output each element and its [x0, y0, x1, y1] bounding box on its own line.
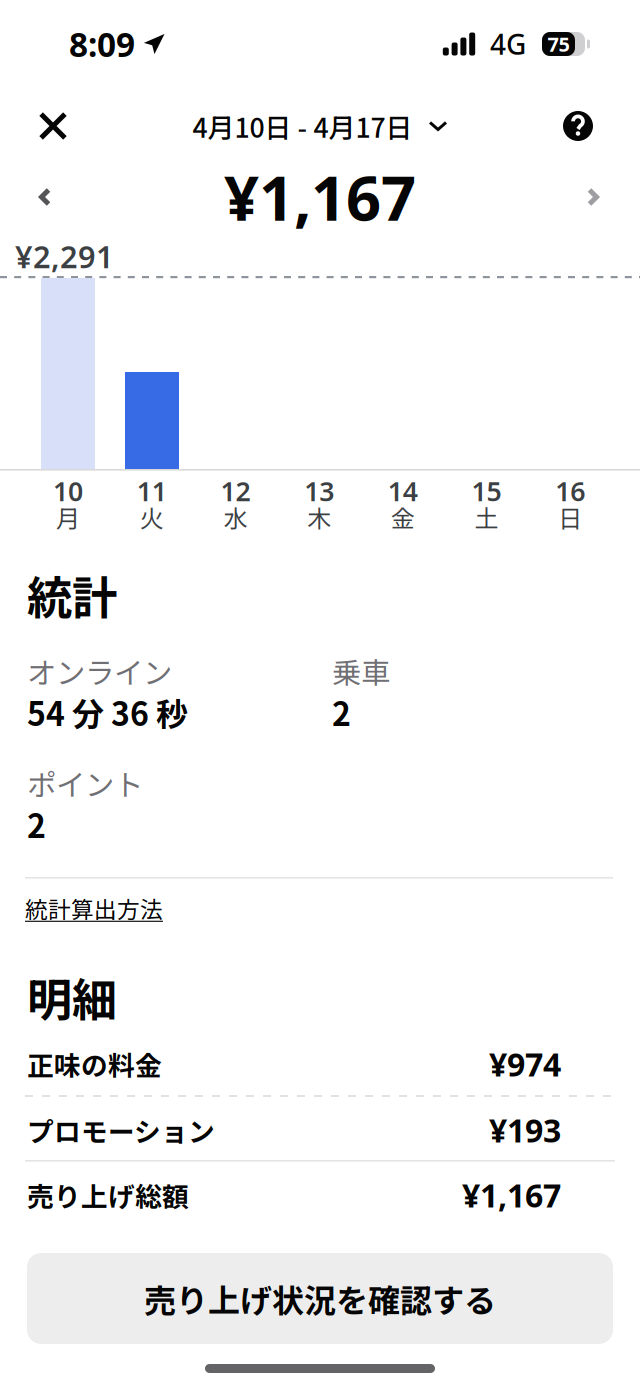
staticText: ポイント [27, 762, 143, 804]
staticText: ¥974 [489, 1043, 561, 1085]
staticText: 火 [140, 500, 164, 534]
button[interactable]: 4月10日 - 4月17日 [182, 95, 457, 157]
staticText: 4G [490, 25, 526, 63]
staticText: 10 [53, 473, 83, 509]
button[interactable]: 統計算出方法 [25, 888, 163, 928]
staticText: ¥193 [489, 1109, 561, 1151]
staticText: 54 分 36 秒 [27, 689, 188, 735]
button[interactable]: Help [547, 95, 609, 157]
staticText: 75 [547, 31, 569, 57]
staticText: 乗車 [332, 650, 390, 692]
staticText: 統計算出方法 [25, 892, 163, 924]
staticText: 12 [220, 473, 250, 509]
staticText: 売り上げ状況を確認する [144, 1275, 496, 1322]
staticText: 8:09 [69, 22, 135, 66]
staticText: 日 [558, 500, 582, 534]
staticText: 土 [475, 500, 499, 534]
staticText: 水 [223, 500, 247, 534]
button[interactable]: Previous week [18, 166, 72, 228]
button[interactable]: 売り上げ状況を確認する [27, 1253, 613, 1344]
staticText: ¥1,167 [462, 1174, 561, 1216]
staticText: 2 [332, 689, 351, 735]
staticText: 月 [56, 500, 80, 534]
staticText: 14 [388, 473, 418, 509]
staticText: プロモーション [27, 1111, 215, 1149]
staticText: 統計 [27, 562, 117, 628]
staticText: 13 [304, 473, 334, 509]
button[interactable]: Close [22, 95, 84, 157]
staticText: 明細 [27, 964, 117, 1030]
staticText: 木 [307, 500, 331, 534]
staticText: 正味の料金 [27, 1045, 162, 1083]
staticText: オンライン [27, 650, 172, 692]
staticText: 4月10日 - 4月17日 [192, 107, 412, 145]
staticText: 売り上げ総額 [27, 1176, 189, 1214]
staticText: 15 [472, 473, 502, 509]
staticText: 2 [27, 801, 46, 847]
staticText: 16 [555, 473, 585, 509]
staticText: ¥2,291 [15, 236, 114, 277]
button[interactable]: Next week [566, 166, 620, 228]
staticText: 金 [391, 500, 415, 534]
staticText: 11 [137, 473, 167, 509]
staticText: ¥1,167 [224, 156, 416, 238]
